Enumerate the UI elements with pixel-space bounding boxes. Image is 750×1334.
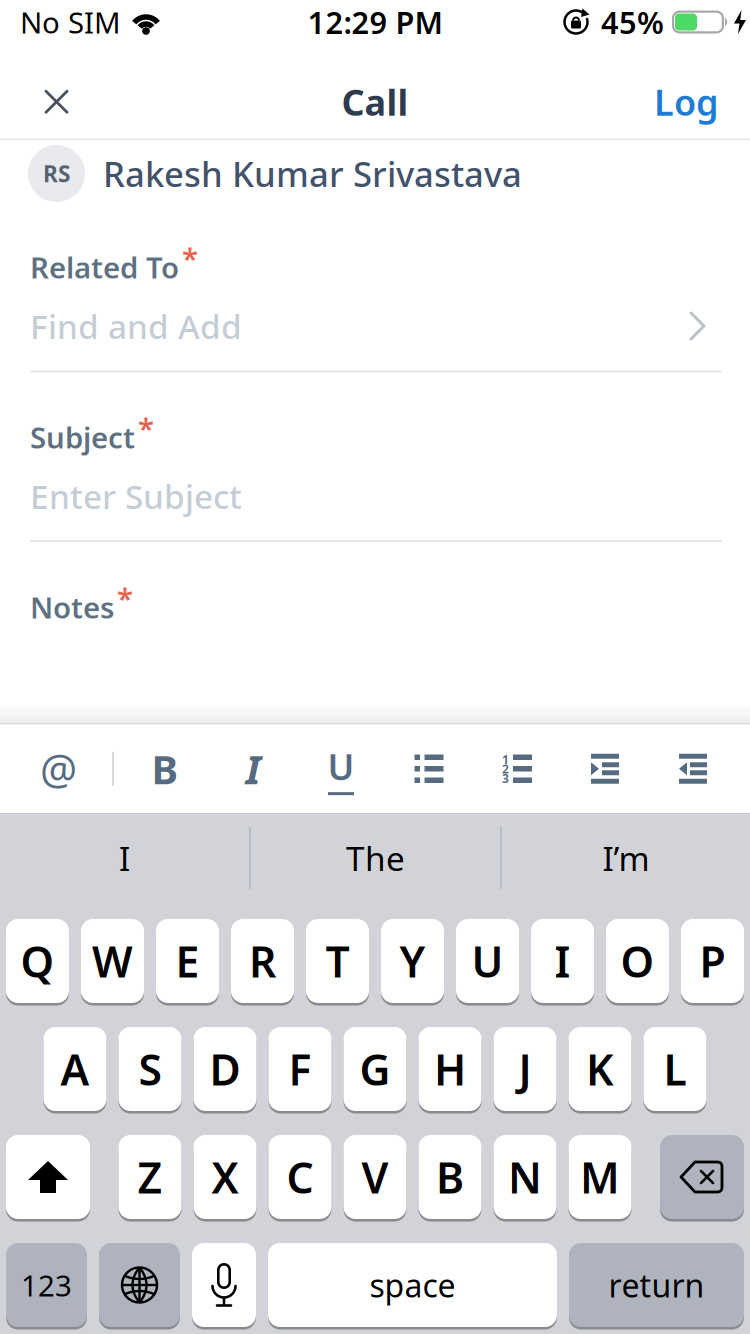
staticText: H xyxy=(434,1041,466,1097)
staticText: * xyxy=(117,578,133,617)
staticText: return xyxy=(608,1264,704,1306)
staticText: S xyxy=(138,1041,161,1097)
button[interactable]: H xyxy=(418,1027,481,1111)
staticText: No SIM xyxy=(20,2,121,41)
staticText: Rakesh Kumar Srivastava xyxy=(103,150,522,196)
staticText: * xyxy=(182,238,198,277)
staticText: D xyxy=(209,1041,240,1097)
button[interactable]: Z xyxy=(118,1135,181,1219)
staticText: T xyxy=(325,933,349,989)
button[interactable]: I xyxy=(531,919,594,1003)
staticText: V xyxy=(361,1149,388,1205)
button[interactable]: space xyxy=(268,1243,557,1327)
staticText: G xyxy=(359,1041,390,1097)
button[interactable]: I’m xyxy=(502,814,750,902)
button[interactable]: L xyxy=(643,1027,706,1111)
staticText: O xyxy=(620,933,654,989)
button[interactable]: X xyxy=(193,1135,256,1219)
button[interactable]: Indent xyxy=(583,739,627,799)
button[interactable]: K xyxy=(568,1027,631,1111)
staticText: I’m xyxy=(602,836,649,880)
staticText: @ xyxy=(40,741,77,796)
button[interactable]: R xyxy=(231,919,294,1003)
staticText: Y xyxy=(399,933,425,989)
staticText: M xyxy=(580,1149,620,1205)
button[interactable]: E xyxy=(156,919,219,1003)
staticText: RS xyxy=(43,158,70,188)
staticText: Notes xyxy=(30,587,114,626)
button[interactable]: Mention xyxy=(30,739,87,799)
button[interactable]: F xyxy=(268,1027,331,1111)
button[interactable]: Italic xyxy=(231,739,275,799)
staticText: Z xyxy=(137,1149,162,1205)
staticText: Subject xyxy=(30,417,135,456)
button[interactable]: Delete xyxy=(660,1135,744,1219)
button[interactable]: Q xyxy=(6,919,69,1003)
staticText: Q xyxy=(20,933,54,989)
button[interactable]: S xyxy=(118,1027,181,1111)
button[interactable]: Outdent xyxy=(671,739,715,799)
staticText: Call xyxy=(341,78,408,126)
staticText: B xyxy=(436,1149,464,1205)
staticText: N xyxy=(508,1149,542,1205)
staticText: 12:29 PM xyxy=(307,2,442,42)
button[interactable]: U xyxy=(456,919,519,1003)
staticText: F xyxy=(288,1041,311,1097)
button[interactable]: Log xyxy=(654,62,719,142)
staticText: I xyxy=(245,742,260,795)
staticText: Enter Subject xyxy=(30,474,242,518)
button[interactable]: Bulleted list xyxy=(407,739,451,799)
staticText: * xyxy=(138,408,154,447)
button[interactable]: N xyxy=(493,1135,556,1219)
button[interactable]: W xyxy=(81,919,144,1003)
button[interactable]: G xyxy=(343,1027,406,1111)
button[interactable]: The xyxy=(251,814,500,902)
button[interactable]: M xyxy=(568,1135,631,1219)
button[interactable]: P xyxy=(681,919,744,1003)
button[interactable]: B xyxy=(418,1135,481,1219)
button[interactable]: Find and Add xyxy=(0,302,750,350)
staticText: E xyxy=(175,933,199,989)
staticText: B xyxy=(151,742,178,795)
button[interactable]: J xyxy=(493,1027,556,1111)
staticText: Related To xyxy=(30,247,179,286)
staticText: C xyxy=(286,1149,313,1205)
button[interactable]: 123 xyxy=(6,1243,87,1327)
button[interactable]: V xyxy=(343,1135,406,1219)
staticText: 2 xyxy=(502,761,509,777)
button[interactable]: Enter Subject xyxy=(0,472,750,520)
button[interactable]: T xyxy=(306,919,369,1003)
staticText: L xyxy=(663,1041,686,1097)
button[interactable]: Dictate xyxy=(192,1243,256,1327)
button[interactable]: I xyxy=(0,814,249,902)
staticText: A xyxy=(60,1041,89,1097)
button[interactable]: Next keyboard xyxy=(99,1243,180,1327)
staticText: J xyxy=(518,1041,531,1097)
staticText: U xyxy=(471,933,503,989)
button[interactable]: return xyxy=(569,1243,744,1327)
staticText: 1 xyxy=(502,751,509,767)
staticText: K xyxy=(586,1041,614,1097)
button[interactable]: D xyxy=(193,1027,256,1111)
staticText: 3 xyxy=(502,770,509,786)
button[interactable]: Close xyxy=(26,71,87,132)
button[interactable]: Underline xyxy=(319,738,363,800)
staticText: X xyxy=(211,1149,238,1205)
staticText: 123 xyxy=(21,1265,72,1304)
button[interactable]: Shift xyxy=(6,1135,90,1219)
staticText: P xyxy=(699,933,725,989)
staticText: 45% xyxy=(601,2,664,42)
staticText: Log xyxy=(654,78,719,126)
staticText: I xyxy=(554,933,570,989)
button[interactable]: Y xyxy=(381,919,444,1003)
staticText: Find and Add xyxy=(30,304,242,348)
button[interactable]: O xyxy=(606,919,669,1003)
button[interactable]: C xyxy=(268,1135,331,1219)
staticText: The xyxy=(346,836,405,880)
button[interactable]: Numbered list xyxy=(495,739,539,799)
staticText: I xyxy=(119,836,130,880)
button[interactable]: A xyxy=(43,1027,106,1111)
staticText: W xyxy=(92,933,133,989)
button[interactable]: Bold xyxy=(143,739,187,799)
staticText: U xyxy=(327,742,354,790)
